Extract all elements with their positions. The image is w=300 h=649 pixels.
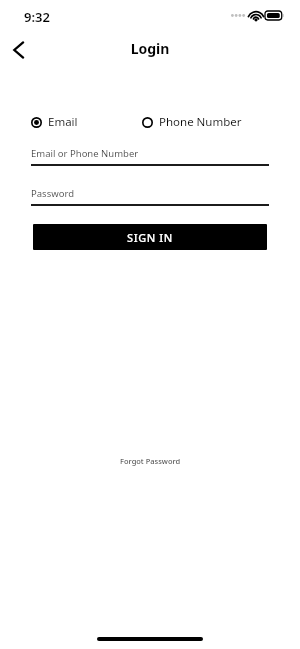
button[interactable]: Password xyxy=(31,187,269,206)
staticText: Password xyxy=(31,187,74,200)
staticText: Email or Phone Number xyxy=(31,147,139,160)
staticText: 9:32 xyxy=(24,8,50,26)
staticText: Email xyxy=(48,114,78,130)
staticText: SIGN IN xyxy=(127,230,173,245)
staticText: Forgot Password xyxy=(120,456,181,466)
button[interactable]: Back xyxy=(2,34,34,66)
button[interactable]: SIGN IN xyxy=(33,224,267,250)
button[interactable]: Phone Number xyxy=(142,112,242,132)
staticText: Phone Number xyxy=(159,114,242,130)
button[interactable]: Email xyxy=(31,112,78,132)
button[interactable]: Email or Phone Number xyxy=(31,147,269,166)
staticText: Login xyxy=(0,39,300,58)
button[interactable]: Forgot Password xyxy=(114,453,187,469)
